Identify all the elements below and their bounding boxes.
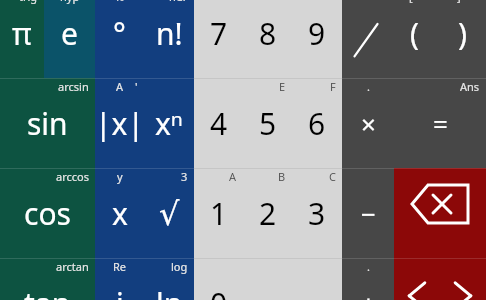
button[interactable]: nCr	[144, 0, 194, 78]
staticText: trig	[19, 0, 38, 4]
staticText: sin	[27, 103, 68, 144]
button[interactable]: Multiply	[342, 78, 394, 168]
staticText: '	[135, 79, 138, 94]
staticText: |x|	[95, 103, 144, 144]
staticText: (	[410, 13, 419, 54]
staticText: A	[116, 79, 124, 94]
staticText: 3	[181, 169, 188, 184]
staticText: e	[61, 13, 78, 54]
staticText: 0	[210, 283, 228, 300]
staticText: E	[279, 79, 286, 94]
button[interactable]: arcsin	[0, 78, 95, 168]
button[interactable]: A	[194, 168, 243, 258]
staticText: .	[367, 79, 370, 94]
staticText: 8	[259, 13, 277, 54]
button[interactable]: hyp	[44, 0, 95, 78]
button[interactable]: Equals	[394, 78, 486, 168]
staticText: ×	[361, 106, 376, 141]
staticText: 3	[308, 193, 326, 234]
staticText: B	[278, 169, 286, 184]
staticText: +	[361, 286, 376, 300]
staticText: Ans	[460, 79, 480, 94]
staticText: [<	[409, 0, 419, 4]
button[interactable]: Right	[440, 258, 486, 300]
staticText: log	[171, 259, 188, 274]
button[interactable]: .	[342, 258, 394, 300]
button[interactable]: 8	[243, 0, 292, 78]
button[interactable]: trig	[0, 0, 44, 78]
staticText: A	[229, 169, 237, 184]
staticText: )	[458, 13, 467, 54]
button[interactable]: 0	[194, 258, 243, 300]
staticText: cos	[24, 193, 71, 234]
staticText: x	[112, 193, 128, 234]
staticText: √	[159, 195, 180, 232]
button[interactable]: ]>	[438, 0, 486, 78]
button[interactable]: y	[95, 168, 144, 258]
button[interactable]: Divide	[342, 0, 390, 78]
staticText: 9	[308, 13, 326, 54]
button[interactable]: B	[243, 168, 292, 258]
staticText: tan	[24, 283, 71, 300]
staticText: nCr	[169, 0, 188, 4]
staticText: arcsin	[58, 79, 89, 94]
staticText: %	[115, 0, 125, 4]
staticText: arccos	[56, 169, 89, 184]
staticText: °	[113, 13, 126, 54]
button[interactable]: [<	[390, 0, 438, 78]
button[interactable]: Delete	[394, 168, 486, 258]
button[interactable]: 4	[194, 78, 243, 168]
staticText: −	[361, 196, 376, 231]
button[interactable]: log	[144, 258, 194, 300]
button[interactable]: Minus	[342, 168, 394, 258]
button[interactable]: %	[95, 0, 144, 78]
staticText: ]>	[457, 0, 467, 4]
staticText: 2	[259, 193, 277, 234]
staticText: arctan	[56, 259, 89, 274]
staticText: hyp	[60, 0, 80, 4]
staticText: π	[12, 13, 32, 54]
staticText: Re	[113, 259, 127, 274]
staticText: 6	[308, 103, 326, 144]
staticText: i	[116, 283, 124, 300]
staticText: n!	[156, 13, 183, 54]
staticText: 7	[210, 13, 228, 54]
button[interactable]: E	[243, 78, 292, 168]
staticText: ln	[156, 283, 183, 300]
button[interactable]: arctan	[0, 258, 95, 300]
button[interactable]: A	[95, 78, 144, 168]
button[interactable]: 3	[144, 168, 194, 258]
staticText: y	[117, 169, 123, 184]
staticText: =	[433, 106, 448, 141]
staticText: F	[330, 79, 336, 94]
button[interactable]: 7	[194, 0, 243, 78]
staticText: .	[367, 259, 370, 274]
button[interactable]: F	[292, 78, 342, 168]
button[interactable]: 9	[292, 0, 342, 78]
staticText: C	[329, 169, 336, 184]
staticText: 1	[210, 193, 228, 234]
staticText: 4	[210, 103, 228, 144]
button[interactable]: xⁿ	[144, 78, 194, 168]
staticText: xⁿ	[155, 103, 183, 144]
button[interactable]: arccos	[0, 168, 95, 258]
staticText: 5	[259, 103, 277, 144]
button[interactable]: C	[292, 168, 342, 258]
button[interactable]: Re	[95, 258, 144, 300]
button[interactable]: Left	[394, 258, 440, 300]
